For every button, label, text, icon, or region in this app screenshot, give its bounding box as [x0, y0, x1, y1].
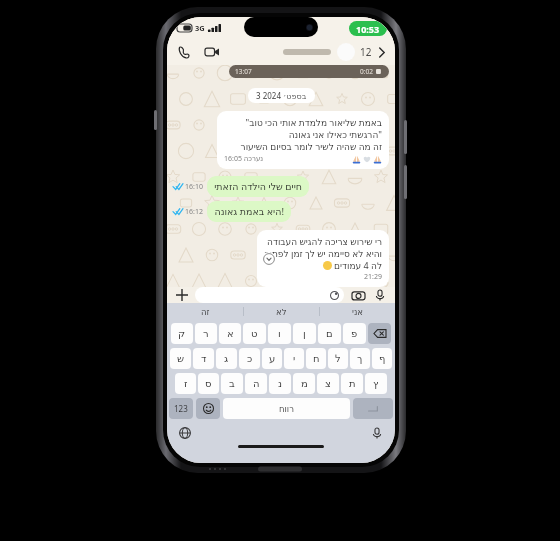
- staticText: 21:29: [364, 272, 382, 282]
- staticText: רי שירוש צריכה להגיש העבודה: [267, 235, 382, 247]
- button[interactable]: Message input: [195, 287, 344, 303]
- staticText: ש: [177, 353, 185, 365]
- button[interactable]: Message options: [262, 252, 276, 266]
- staticText: 12: [360, 45, 372, 59]
- button[interactable]: Return: [353, 398, 393, 419]
- staticText: הרגשתי כאילו אני גאונה": [288, 128, 382, 140]
- button[interactable]: כ: [239, 348, 260, 369]
- button[interactable]: ץ: [365, 373, 387, 394]
- button[interactable]: ף: [372, 348, 392, 369]
- button[interactable]: חיים שלי הילדה הזאתי: [207, 176, 309, 197]
- button[interactable]: ש: [170, 348, 191, 369]
- staticText: 0:02: [360, 67, 373, 76]
- button[interactable]: Voice call: [175, 43, 193, 61]
- staticText: 13:07: [235, 67, 252, 76]
- staticText: זה מה שהיה לשיר לומר בסיום השיעור: [240, 140, 382, 152]
- button[interactable]: ד: [193, 348, 214, 369]
- staticText: ח: [313, 353, 320, 365]
- staticText: ת: [349, 378, 356, 390]
- staticText: חיים שלי הילדה הזאתי: [214, 180, 302, 193]
- staticText: ם: [326, 328, 333, 340]
- button[interactable]: ל: [328, 348, 348, 369]
- button[interactable]: לא: [244, 303, 319, 320]
- button[interactable]: ך: [350, 348, 370, 369]
- button[interactable]: "באמת שליאור מלמדת אותי הכי טוב: [217, 111, 389, 169]
- staticText: ג: [224, 353, 229, 365]
- button[interactable]: ר: [195, 323, 217, 344]
- button[interactable]: Backspace: [368, 323, 391, 344]
- staticText: 3G: [195, 23, 205, 33]
- staticText: ד: [201, 353, 207, 365]
- button[interactable]: היא באמת גאונה!: [207, 201, 291, 222]
- button[interactable]: מ: [293, 373, 315, 394]
- staticText: נ: [278, 378, 283, 390]
- staticText: זה: [201, 307, 210, 317]
- button[interactable]: פ: [343, 323, 366, 344]
- staticText: ב: [229, 378, 235, 390]
- button[interactable]: רווח: [223, 398, 350, 419]
- button[interactable]: Attach: [174, 287, 190, 303]
- button[interactable]: ג: [216, 348, 237, 369]
- button[interactable]: ם: [318, 323, 341, 344]
- staticText: מ: [301, 378, 308, 390]
- button[interactable]: ס: [198, 373, 219, 394]
- button[interactable]: ט: [243, 323, 266, 344]
- staticText: היא באמת גאונה!: [214, 205, 284, 218]
- button[interactable]: Emoji: [196, 398, 220, 419]
- staticText: ן: [303, 328, 306, 340]
- staticText: לא: [276, 307, 287, 317]
- staticText: 3 בספט׳ 2024: [256, 90, 307, 101]
- staticText: ס: [205, 378, 212, 390]
- button[interactable]: ק: [171, 323, 193, 344]
- staticText: אני: [352, 307, 363, 317]
- staticText: ל: [335, 353, 341, 365]
- button[interactable]: ע: [262, 348, 282, 369]
- staticText: צ: [325, 378, 331, 390]
- button[interactable]: אני: [320, 303, 395, 320]
- button[interactable]: ב: [221, 373, 243, 394]
- button[interactable]: Audio playback: [229, 65, 389, 78]
- button[interactable]: ת: [341, 373, 363, 394]
- staticText: ך: [357, 353, 363, 365]
- staticText: פ: [351, 328, 358, 340]
- staticText: ט: [251, 328, 258, 340]
- button[interactable]: Video call: [203, 43, 221, 61]
- button[interactable]: Dictation: [369, 425, 385, 441]
- staticText: 123: [174, 403, 188, 414]
- staticText: 10:53: [356, 23, 380, 35]
- staticText: 16:12: [185, 207, 203, 217]
- staticText: נערכה 16:05: [224, 154, 264, 164]
- button[interactable]: ה: [245, 373, 267, 394]
- staticText: רווח: [279, 404, 294, 414]
- button[interactable]: צ: [317, 373, 339, 394]
- button[interactable]: 123: [169, 398, 193, 419]
- staticText: ו: [278, 328, 281, 340]
- button[interactable]: ז: [175, 373, 196, 394]
- button[interactable]: ח: [306, 348, 326, 369]
- staticText: ף: [379, 353, 386, 365]
- button[interactable]: Camera: [350, 287, 366, 303]
- staticText: י: [293, 353, 296, 365]
- staticText: כ: [247, 353, 253, 365]
- staticText: ע: [269, 353, 276, 365]
- button[interactable]: Voice message: [372, 287, 388, 303]
- button[interactable]: Contact avatar: [337, 43, 355, 61]
- button[interactable]: ו: [268, 323, 291, 344]
- button[interactable]: ן: [293, 323, 316, 344]
- staticText: "באמת שליאור מלמדת אותי הכי טוב: [245, 116, 382, 128]
- staticText: ץ: [373, 378, 379, 390]
- button[interactable]: Back: [375, 46, 387, 58]
- button[interactable]: נ: [269, 373, 291, 394]
- staticText: ז: [184, 378, 188, 390]
- staticText: ה: [253, 378, 260, 390]
- button[interactable]: י: [284, 348, 304, 369]
- button[interactable]: זה: [167, 303, 243, 320]
- staticText: לה 4 עמודים: [334, 259, 382, 271]
- staticText: ר: [203, 328, 209, 340]
- staticText: והיא לא סיימה יש לך זמן לפתור: [264, 247, 382, 259]
- button[interactable]: Change keyboard: [177, 425, 193, 441]
- button[interactable]: רי שירוש צריכה להגיש העבודה: [257, 230, 389, 287]
- staticText: א: [227, 328, 234, 340]
- button[interactable]: א: [219, 323, 241, 344]
- staticText: 16:10: [185, 182, 203, 192]
